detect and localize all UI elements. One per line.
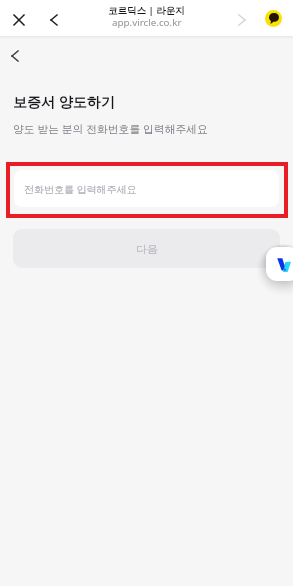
button[interactable]: KakaoTalk chat — [262, 7, 285, 30]
staticText: 양도 받는 분의 전화번호를 입력해주세요 — [13, 121, 208, 136]
staticText: 전화번호를 입력해주세요 — [24, 182, 137, 196]
button[interactable]: Back — [2, 43, 27, 68]
button[interactable]: Vircle assistant — [266, 247, 293, 281]
staticText: 코르딕스 | 라운지 — [108, 4, 185, 17]
staticText: 보증서 양도하기 — [13, 92, 115, 111]
button[interactable]: Forward — [229, 7, 255, 33]
button[interactable]: 다음 — [13, 229, 280, 268]
button[interactable]: Close — [5, 6, 32, 33]
button[interactable]: 전화번호를 입력해주세요 — [14, 170, 279, 207]
staticText: app.vircle.co.kr — [112, 16, 182, 29]
button[interactable]: Back — [40, 6, 67, 33]
staticText: 다음 — [136, 242, 158, 256]
